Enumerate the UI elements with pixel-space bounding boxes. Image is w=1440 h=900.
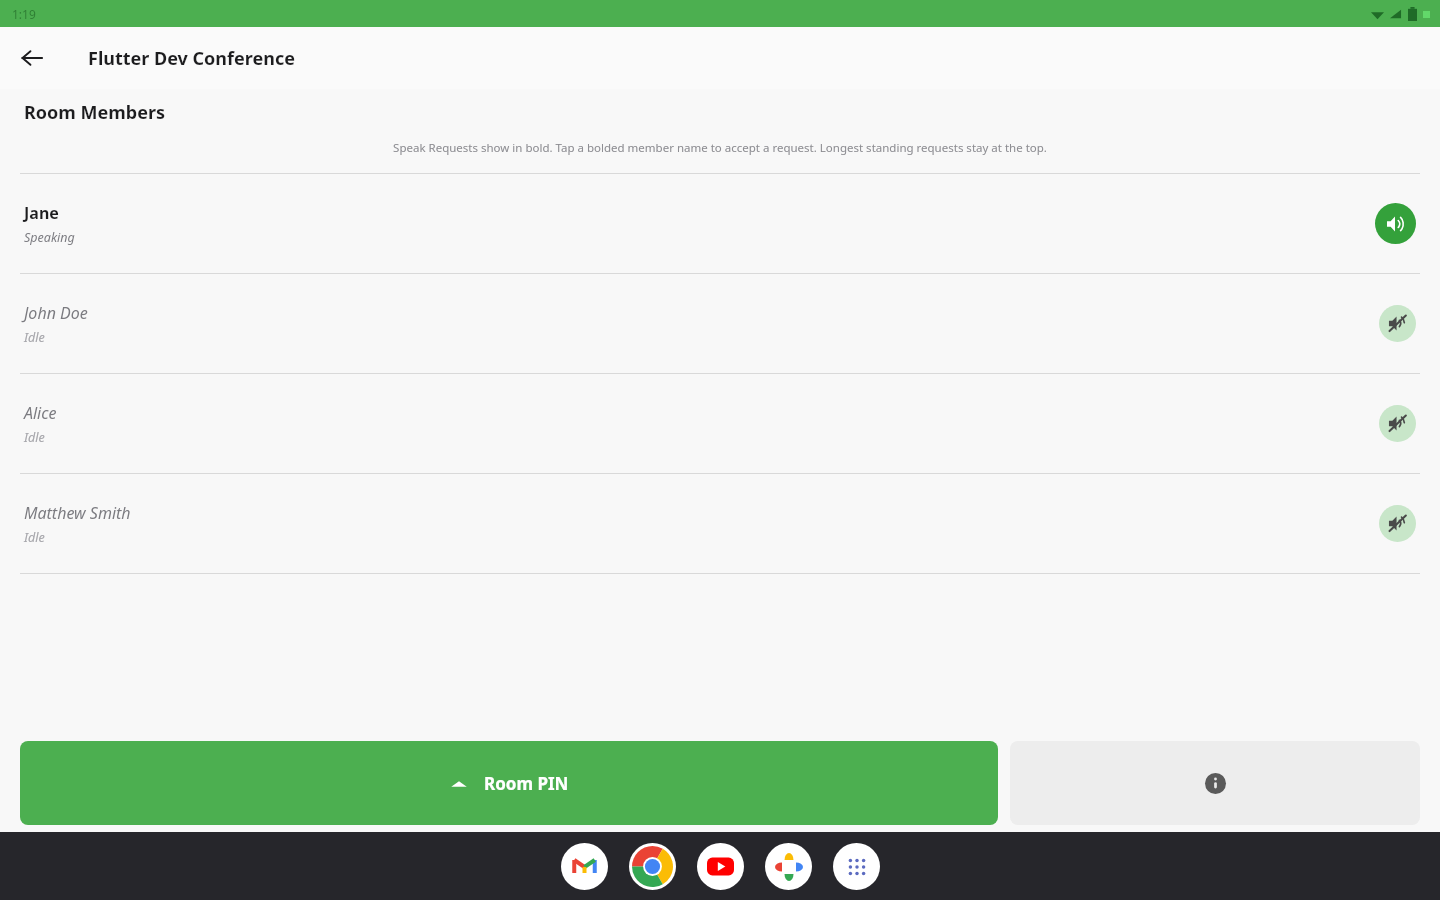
button[interactable]: John Doe xyxy=(0,274,1440,373)
staticText: Idle xyxy=(24,329,45,346)
staticText: 1:19 xyxy=(12,6,36,22)
staticText: Flutter Dev Conference xyxy=(88,46,295,71)
staticText: Room PIN xyxy=(484,772,569,795)
button[interactable]: Matthew Smith xyxy=(0,474,1440,573)
button[interactable]: Gmail xyxy=(561,843,608,890)
staticText: Idle xyxy=(24,429,45,446)
button[interactable]: Back xyxy=(10,36,54,80)
button[interactable]: Chrome xyxy=(629,843,676,890)
staticText: John Doe xyxy=(24,302,88,324)
button[interactable]: YouTube xyxy=(697,843,744,890)
button[interactable]: Jane xyxy=(0,174,1440,273)
button[interactable]: Unmute Alice xyxy=(1379,405,1416,442)
staticText: Room Members xyxy=(24,100,166,125)
button[interactable]: Google Photos xyxy=(765,843,812,890)
button[interactable]: Mute Jane xyxy=(1375,203,1416,244)
button[interactable]: Alice xyxy=(0,374,1440,473)
button[interactable]: Unmute John Doe xyxy=(1379,305,1416,342)
staticText: Speaking xyxy=(24,229,75,246)
staticText: Speak Requests show in bold. Tap a bolde… xyxy=(24,140,1416,156)
button[interactable]: Room PIN xyxy=(20,741,998,825)
staticText: Jane xyxy=(24,202,59,224)
staticText: Matthew Smith xyxy=(24,502,131,524)
staticText: Alice xyxy=(24,402,57,424)
button[interactable]: Unmute Matthew Smith xyxy=(1379,505,1416,542)
staticText: Idle xyxy=(24,529,45,546)
button[interactable]: All apps xyxy=(833,843,880,890)
button[interactable]: Room info xyxy=(1010,741,1420,825)
